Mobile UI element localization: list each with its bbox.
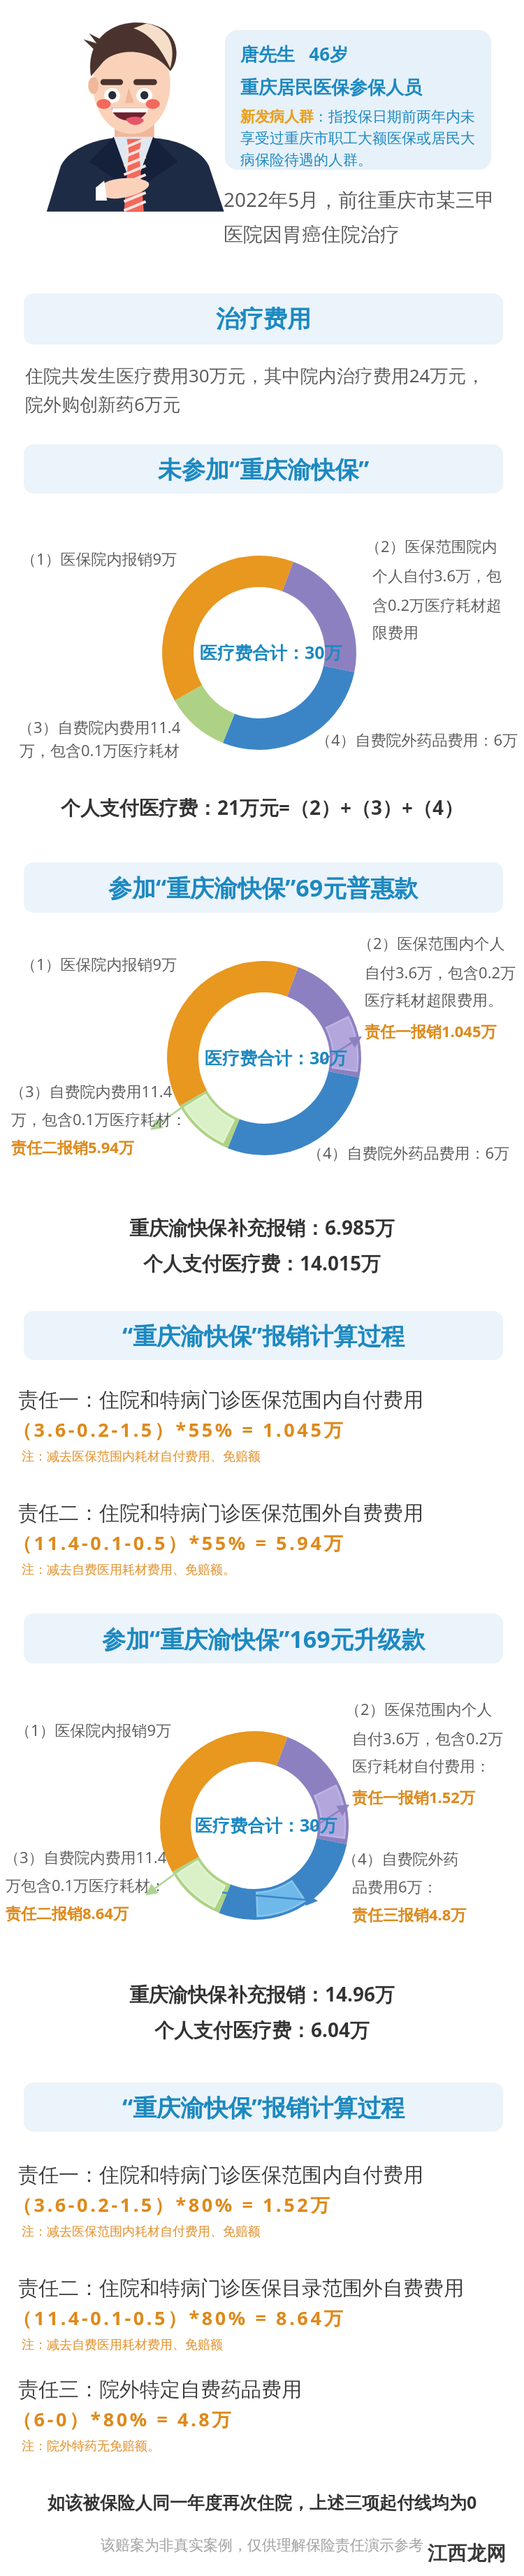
staticText: （4）自费院外药品费用：6万 — [316, 729, 518, 750]
staticText: 万，包含0.1万医疗耗材： — [11, 1108, 187, 1129]
staticText: 医院因胃癌住院治疗 — [224, 222, 400, 247]
staticText: 注：院外特药无免赔额。 — [22, 2438, 160, 2454]
staticText: （1）医保院内报销9万 — [21, 953, 177, 974]
staticText: 责任二：住院和特病门诊医保目录范围外自费费用 — [18, 2275, 464, 2301]
staticText: 未参加“重庆渝快保” — [158, 453, 370, 485]
staticText: （1）医保院内报销9万 — [21, 548, 177, 569]
staticText: 责任一报销1.52万 — [352, 1786, 475, 1807]
staticText: 万包含0.1万医疗耗材： — [6, 1874, 166, 1895]
staticText: 万，包含0.1万医疗耗材 — [20, 739, 180, 760]
staticText: 责任三：院外特定自费药品费用 — [18, 2377, 302, 2403]
button[interactable]: “重庆渝快保”报销计算过程 — [24, 2083, 503, 2132]
staticText: 注：减去医保范围内耗材自付费用、免赔额 — [22, 1449, 261, 1465]
staticText: 住院共发生医疗费用30万元，其中院内治疗费用24万元， — [25, 363, 485, 388]
staticText: 参加“重庆渝快保”69元普惠款 — [108, 871, 419, 904]
staticText: （2）医保范围院内 — [365, 535, 497, 556]
staticText: 重庆渝快保补充报销：14.96万 — [129, 1981, 395, 2007]
staticText: （4）自费院外药 — [342, 1848, 459, 1869]
staticText: （6-0）*80% = 4.8万 — [13, 2406, 233, 2432]
staticText: 责任一：住院和特病门诊医保范围内自付费用 — [18, 2162, 423, 2188]
staticText: 品费用6万： — [352, 1876, 438, 1897]
button[interactable]: 参加“重庆渝快保”169元升级款 — [24, 1614, 503, 1663]
staticText: 重庆渝快保补充报销：6.985万 — [129, 1214, 395, 1240]
button[interactable]: “重庆渝快保”报销计算过程 — [24, 1311, 503, 1360]
staticText: 医疗费合计：30万 — [195, 1813, 337, 1837]
staticText: （3）自费院内费用11.4 — [18, 716, 181, 737]
staticText: （11.4-0.1-0.5）*80% = 8.64万 — [13, 2305, 346, 2331]
button[interactable]: 参加“重庆渝快保”69元普惠款 — [24, 862, 503, 913]
staticText: （3.6-0.2-1.5）*55% = 1.045万 — [13, 1417, 346, 1442]
staticText: 如该被保险人同一年度再次住院，上述三项起付线均为0 — [48, 2490, 477, 2514]
staticText: （2）医保范围内个人 — [345, 1698, 493, 1719]
staticText: 责任一：住院和特病门诊医保范围内自付费用 — [18, 1387, 423, 1413]
staticText: 重庆居民医保参保人员 — [240, 76, 422, 99]
staticText: 含0.2万医疗耗材超 — [372, 594, 502, 615]
button[interactable]: 治疗费用 — [24, 294, 503, 345]
staticText: 个人支付医疗费：21万元=（2）+（3）+（4） — [61, 794, 464, 820]
staticText: 2022年5月，前往重庆市某三甲 — [224, 186, 495, 212]
staticText: （11.4-0.1-0.5）*55% = 5.94万 — [13, 1530, 346, 1556]
staticText: 限费用 — [372, 623, 419, 643]
staticText: 责任二：住院和特病门诊医保范围外自费费用 — [18, 1500, 423, 1526]
staticText: 自付3.6万，包含0.2万 — [365, 962, 516, 983]
staticText: 院外购创新药6万元 — [25, 391, 181, 417]
button[interactable]: 未参加“重庆渝快保” — [24, 444, 503, 493]
staticText: 责任二报销5.94万 — [11, 1136, 134, 1157]
staticText: 注：减去医保范围内耗材自付费用、免赔额 — [22, 2224, 261, 2240]
staticText: 注：减去自费医用耗材费用、免赔额 — [22, 2337, 223, 2353]
staticText: 责任一报销1.045万 — [365, 1020, 497, 1041]
staticText: 该赔案为非真实案例，仅供理解保险责任演示参考 — [101, 2536, 423, 2554]
staticText: （4）自费院外药品费用：6万 — [307, 1142, 510, 1163]
staticText: 江西龙网 — [428, 2541, 506, 2566]
staticText: （1）医保院内报销9万 — [15, 1719, 172, 1740]
staticText: 自付3.6万，包含0.2万 — [352, 1728, 504, 1749]
staticText: （3）自费院内费用11.4 — [10, 1080, 173, 1101]
staticText: “重庆渝快保”报销计算过程 — [122, 2091, 405, 2123]
staticText: 治疗费用 — [216, 304, 311, 334]
staticText: 个人支付医疗费：6.04万 — [154, 2016, 370, 2043]
staticText: （2）医保范围内个人 — [358, 932, 505, 953]
staticText: 唐先生 46岁 — [240, 41, 349, 66]
staticText: 责任三报销4.8万 — [352, 1904, 467, 1925]
staticText: “重庆渝快保”报销计算过程 — [122, 1319, 405, 1352]
staticText: 医疗耗材自付费用： — [352, 1757, 490, 1777]
staticText: 个人支付医疗费：14.015万 — [143, 1250, 381, 1276]
staticText: 医疗耗材超限费用。 — [365, 991, 503, 1011]
staticText: 责任二报销8.64万 — [6, 1902, 129, 1923]
staticText: （3.6-0.2-1.5）*80% = 1.52万 — [13, 2192, 332, 2217]
staticText: 医疗费合计：30万 — [205, 1045, 347, 1069]
staticText: 个人自付3.6万，包 — [372, 565, 502, 586]
staticText: 注：减去自费医用耗材费用、免赔额。 — [22, 1562, 235, 1578]
staticText: 参加“重庆渝快保”169元升级款 — [102, 1623, 425, 1655]
staticText: 新发病人群：指投保日期前两年内未享受过重庆市职工大额医保或居民大病保险待遇的人群… — [240, 108, 478, 169]
staticText: 医疗费合计：30万 — [200, 640, 342, 664]
staticText: （3）自费院内费用11.4 — [4, 1846, 167, 1867]
